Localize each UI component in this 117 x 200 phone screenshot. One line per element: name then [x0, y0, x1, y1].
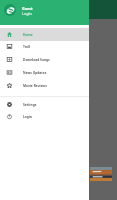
button[interactable]: Advertisement: [90, 167, 112, 181]
staticText: Movie Reviews: [23, 84, 47, 88]
button[interactable]: News Updates: [0, 66, 89, 79]
button[interactable]: Home: [0, 28, 89, 41]
staticText: Home: [23, 33, 33, 37]
staticText: Download Songs: [23, 58, 50, 62]
button[interactable]: Troll: [0, 40, 89, 53]
staticText: Guest: [22, 6, 33, 11]
button[interactable]: Login: [0, 110, 89, 123]
button[interactable]: Download Songs: [0, 53, 89, 66]
button[interactable]: Movie Reviews: [0, 79, 89, 92]
staticText: News Updates: [23, 71, 47, 75]
button[interactable]: Settings: [0, 98, 89, 111]
staticText: Login: [22, 11, 32, 16]
button[interactable]: Guest: [0, 0, 89, 25]
staticText: Troll: [23, 45, 31, 49]
staticText: Login: [23, 115, 32, 119]
staticText: Settings: [23, 103, 37, 107]
